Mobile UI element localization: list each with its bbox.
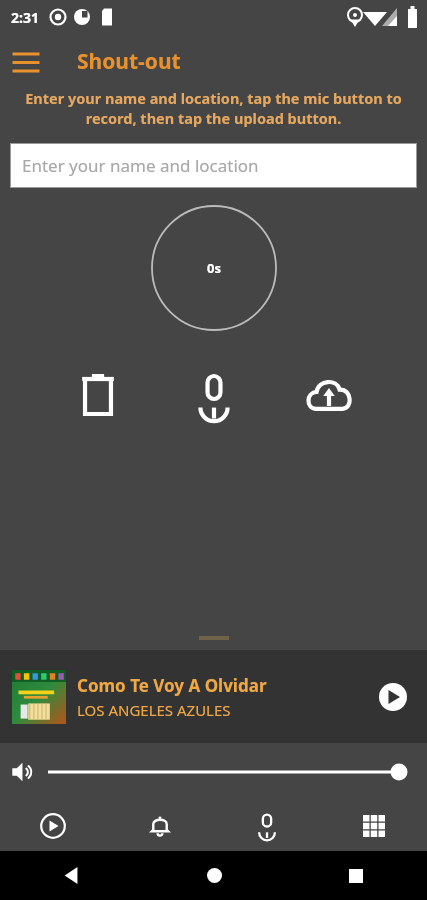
button[interactable]: Apps xyxy=(320,800,427,851)
button[interactable]: Volume xyxy=(0,748,48,796)
staticText: Enter your name and location xyxy=(22,154,259,177)
staticText: 2:31 xyxy=(11,8,39,27)
button[interactable]: Notifications xyxy=(106,800,213,851)
button[interactable]: Upload xyxy=(303,370,355,422)
button[interactable]: Timer xyxy=(151,205,277,331)
button[interactable]: Record xyxy=(213,800,320,851)
staticText: LOS ANGELES AZULES xyxy=(77,700,231,720)
staticText: Shout-out xyxy=(77,47,181,76)
button[interactable]: Recents xyxy=(285,851,427,900)
button[interactable]: Delete recording xyxy=(72,370,124,422)
button[interactable]: Back xyxy=(0,851,143,900)
staticText: Como Te Voy A Olvidar xyxy=(77,674,267,697)
button[interactable]: Play xyxy=(367,671,419,723)
button[interactable]: Play xyxy=(0,800,106,851)
staticText: Enter your name and location, tap the mi… xyxy=(24,88,403,128)
button[interactable]: Menu xyxy=(6,41,46,81)
button[interactable]: Home xyxy=(143,851,285,900)
button[interactable]: Record xyxy=(188,370,240,422)
button[interactable]: Volume slider xyxy=(48,755,399,789)
button[interactable]: Enter your name and location xyxy=(10,143,417,188)
staticText: 0s xyxy=(207,259,221,277)
button[interactable]: Como Te Voy A Olvidar xyxy=(0,650,427,743)
